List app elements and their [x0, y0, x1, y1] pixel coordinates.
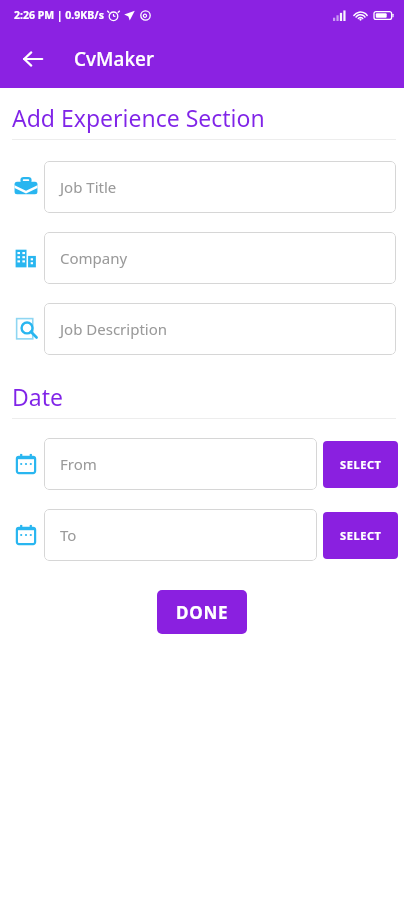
button[interactable]: Back	[12, 38, 54, 80]
staticText: CvMaker	[74, 46, 154, 72]
staticText: DONE	[176, 601, 229, 624]
button[interactable]: From	[44, 438, 317, 490]
staticText: Job Description	[60, 319, 168, 339]
button[interactable]: To	[44, 509, 317, 561]
staticText: Job Title	[60, 177, 117, 197]
button[interactable]: SELECT	[323, 441, 398, 488]
button[interactable]: Job Title	[44, 161, 396, 213]
button[interactable]: DONE	[157, 590, 247, 634]
staticText: Company	[60, 248, 128, 268]
staticText: SELECT	[340, 528, 382, 543]
staticText: SELECT	[340, 457, 382, 472]
button[interactable]: Company	[44, 232, 396, 284]
staticText: From	[60, 454, 97, 474]
staticText: Date	[12, 381, 63, 412]
button[interactable]: SELECT	[323, 512, 398, 559]
staticText: Add Experience Section	[12, 102, 265, 133]
staticText: 2:26 PM | 0.9KB/s	[14, 8, 104, 22]
staticText: To	[60, 525, 77, 545]
button[interactable]: Job Description	[44, 303, 396, 355]
